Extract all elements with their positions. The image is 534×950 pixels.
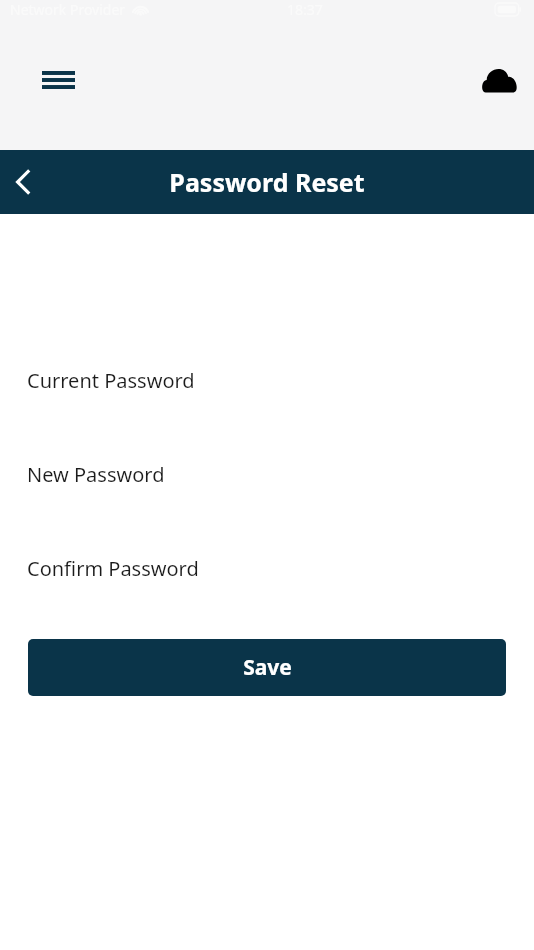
button[interactable]: New Password xyxy=(0,459,534,490)
button[interactable]: Cloud sync xyxy=(474,58,526,102)
button[interactable]: Save xyxy=(28,639,506,696)
staticText: Current Password xyxy=(27,367,195,394)
button[interactable]: Open navigation menu xyxy=(29,58,87,102)
staticText: Confirm Password xyxy=(27,555,199,582)
button[interactable]: Confirm Password xyxy=(0,553,534,584)
staticText: Save xyxy=(243,653,292,682)
button[interactable]: Current Password xyxy=(0,365,534,396)
button[interactable]: Back xyxy=(0,150,46,214)
staticText: New Password xyxy=(27,461,165,488)
staticText: Password Reset xyxy=(169,165,365,199)
